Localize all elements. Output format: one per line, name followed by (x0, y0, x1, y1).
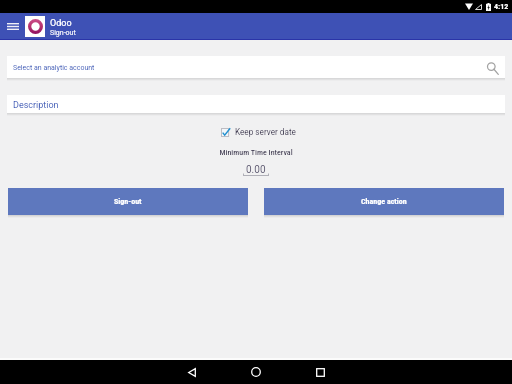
staticText: Change action (361, 197, 407, 206)
staticText: Sign-out (50, 29, 76, 37)
staticText: 0.00 (246, 164, 266, 176)
button[interactable]: Select an analytic account (7, 56, 505, 78)
staticText: Select an analytic account (13, 64, 95, 72)
button[interactable]: Sign-out (8, 188, 248, 215)
button[interactable]: Change action (264, 188, 504, 215)
button[interactable]: Keep server date (221, 127, 296, 137)
button[interactable]: Description (7, 95, 505, 113)
staticText: Sign-out (114, 197, 142, 206)
staticText: 4:12 (494, 2, 509, 11)
staticText: Description (13, 100, 59, 111)
button[interactable]: Home (244, 360, 268, 384)
staticText: Odoo (50, 18, 72, 29)
button[interactable]: Recent apps (308, 360, 332, 384)
button[interactable]: Open navigation drawer (7, 23, 19, 30)
button[interactable]: Search (486, 62, 499, 75)
button[interactable]: Back (180, 360, 204, 384)
staticText: Minimum Time Interval (0, 148, 512, 157)
staticText: Keep server date (235, 127, 296, 137)
